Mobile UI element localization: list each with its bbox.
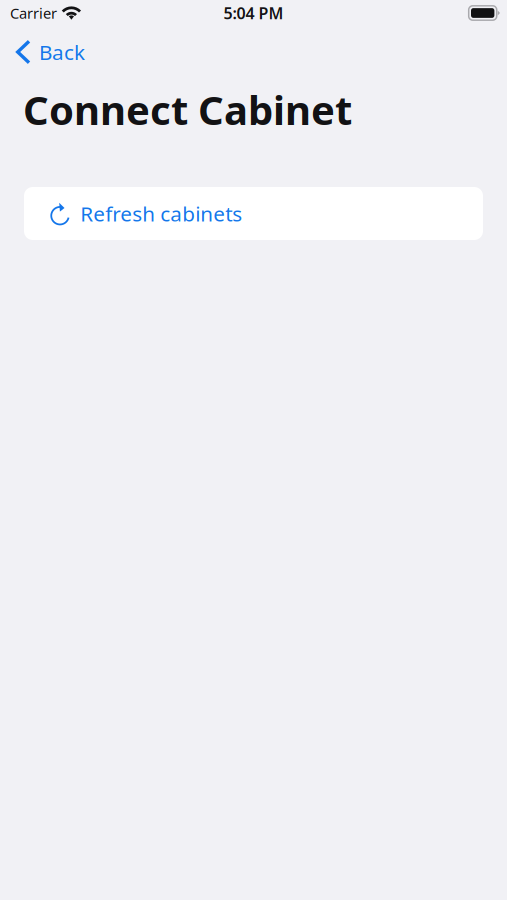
- button[interactable]: Refresh cabinets: [24, 187, 483, 240]
- staticText: 5:04 PM: [223, 2, 283, 24]
- staticText: Refresh cabinets: [80, 199, 242, 227]
- button[interactable]: Back: [0, 33, 98, 71]
- staticText: Back: [39, 38, 85, 66]
- staticText: Connect Cabinet: [23, 82, 352, 137]
- staticText: Carrier: [10, 3, 57, 23]
